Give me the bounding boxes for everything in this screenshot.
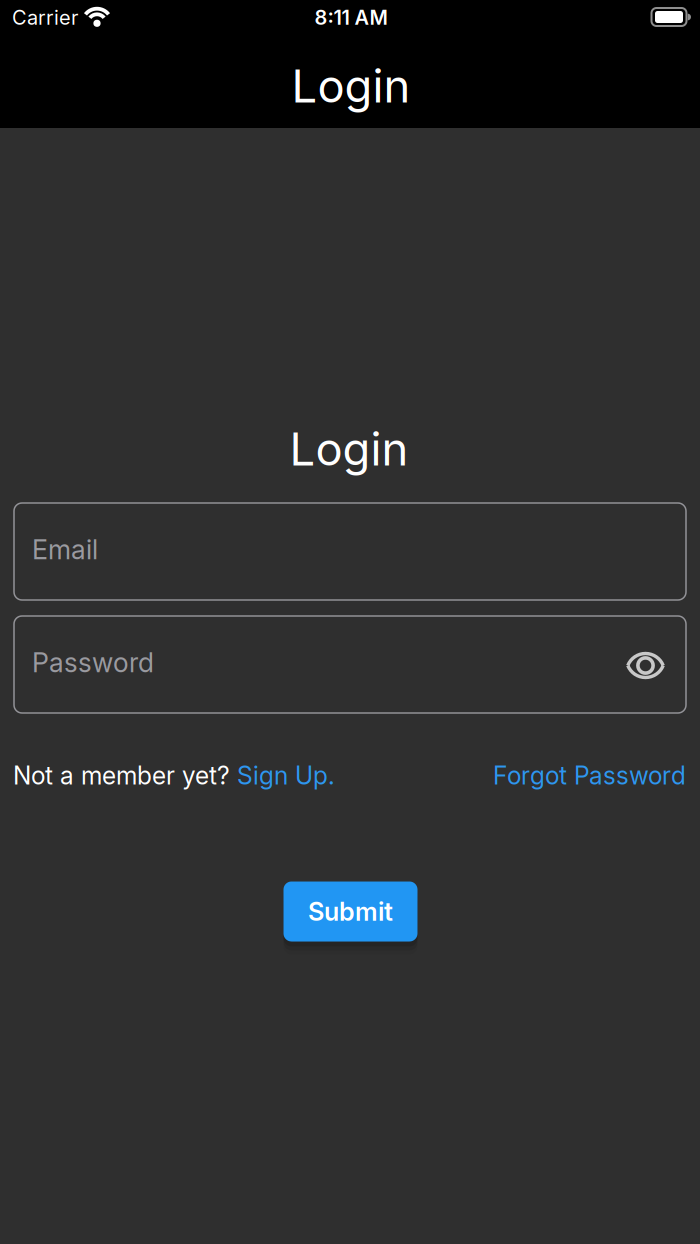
button[interactable]: [626, 651, 665, 679]
button[interactable]: Email: [14, 503, 686, 600]
staticText: Login: [291, 59, 410, 113]
staticText: Carrier: [12, 5, 78, 30]
staticText: Email: [32, 533, 98, 566]
button[interactable]: Password: [14, 616, 686, 713]
staticText: 8:11 AM: [314, 5, 387, 30]
staticText: Login: [289, 422, 408, 476]
staticText: Submit: [308, 896, 393, 927]
staticText: Sign Up.: [237, 761, 335, 790]
staticText: Not a member yet?: [13, 761, 237, 790]
button[interactable]: Sign Up.: [237, 761, 335, 790]
button[interactable]: Submit: [283, 881, 417, 941]
staticText: Forgot Password: [493, 761, 686, 790]
button[interactable]: Forgot Password: [493, 761, 686, 790]
staticText: Password: [32, 646, 154, 679]
